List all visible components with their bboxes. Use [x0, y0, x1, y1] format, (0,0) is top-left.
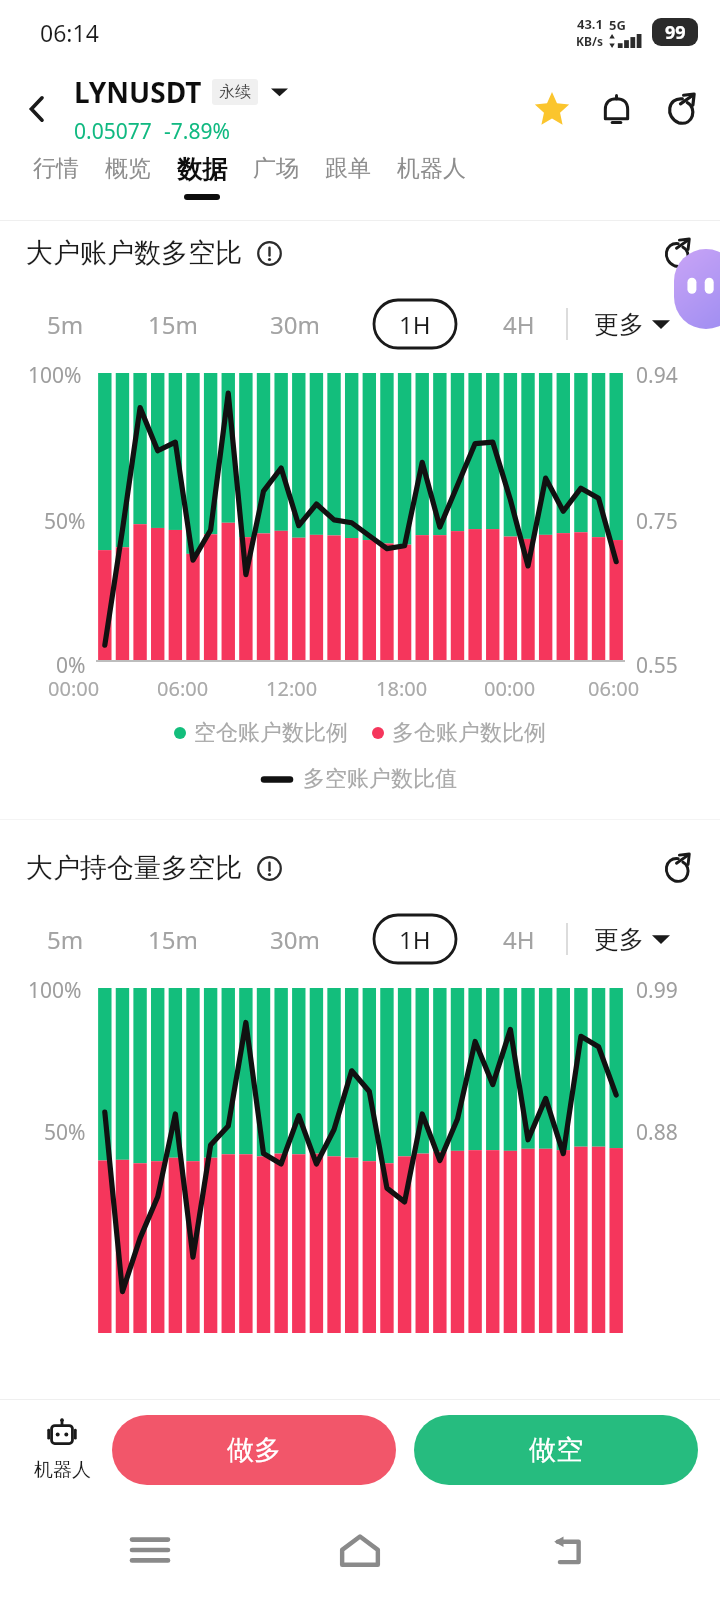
staticText: 5G [609, 16, 626, 34]
button[interactable]: 1H [374, 300, 456, 348]
staticText: 99 [665, 20, 686, 45]
staticText: 1H [399, 308, 431, 341]
staticText: 0.99 [636, 976, 678, 1005]
staticText: 00:00 [48, 675, 100, 702]
button[interactable]: Info [254, 853, 284, 883]
button[interactable]: 1H [374, 915, 456, 963]
button[interactable]: 永续 [212, 79, 258, 105]
button[interactable]: 5m [34, 300, 96, 348]
button[interactable]: Share chart [654, 231, 698, 275]
staticText: 做空 [529, 1433, 583, 1467]
staticText: 行情 [33, 154, 79, 183]
staticText: 5m [47, 308, 84, 341]
button[interactable]: 15m [142, 915, 204, 963]
staticText: 100% [28, 976, 82, 1005]
staticText: 多仓账户数比例 [392, 719, 546, 747]
staticText: 空仓账户数比例 [194, 719, 348, 747]
staticText: -7.89% [164, 117, 230, 146]
button[interactable]: Price alert [584, 77, 648, 141]
staticText: 数据 [177, 154, 227, 185]
button[interactable]: Change contract [268, 83, 290, 101]
button[interactable]: Recents [90, 1514, 210, 1586]
staticText: 06:00 [157, 675, 209, 702]
button[interactable]: 概览 [92, 154, 164, 183]
button[interactable]: Back [0, 64, 74, 154]
button[interactable]: 跟单 [312, 154, 384, 183]
staticText: 0% [56, 651, 86, 680]
button[interactable]: 广场 [240, 154, 312, 183]
staticText: 广场 [253, 154, 299, 183]
staticText: 4H [503, 308, 535, 341]
button[interactable]: 机器人 [18, 1400, 106, 1500]
staticText: 12:00 [266, 675, 318, 702]
staticText: 跟单 [325, 154, 371, 183]
staticText: 100% [28, 361, 82, 390]
staticText: 0.05077 [74, 117, 152, 146]
staticText: 0.55 [636, 651, 678, 680]
button[interactable]: 更多 [590, 305, 674, 344]
staticText: 0.94 [636, 361, 678, 390]
staticText: 06:14 [40, 17, 99, 48]
button[interactable]: Favorite [520, 77, 584, 141]
staticText: 概览 [105, 154, 151, 183]
button[interactable]: 行情 [20, 154, 92, 183]
button[interactable]: Share chart [654, 846, 698, 890]
staticText: 更多 [594, 309, 644, 340]
staticText: 43.1 [577, 15, 603, 33]
staticText: 50% [44, 507, 86, 536]
staticText: 大户账户数多空比 [26, 236, 242, 270]
staticText: 50% [44, 1118, 86, 1147]
staticText: 机器人 [397, 154, 466, 183]
staticText: KB/s [576, 33, 603, 49]
button[interactable]: Info [254, 238, 284, 268]
staticText: 机器人 [34, 1458, 91, 1482]
staticText: 00:00 [484, 675, 536, 702]
staticText: 永续 [219, 82, 251, 102]
button[interactable]: 做空 [414, 1415, 698, 1485]
button[interactable]: Back [510, 1514, 630, 1586]
staticText: 多空账户数比值 [303, 765, 457, 793]
staticText: 1H [399, 923, 431, 956]
staticText: 大户持仓量多空比 [26, 851, 242, 885]
button[interactable]: 30m [264, 915, 326, 963]
staticText: 15m [148, 923, 198, 956]
button[interactable]: Share [648, 77, 712, 141]
staticText: 更多 [594, 924, 644, 955]
button[interactable]: 更多 [590, 920, 674, 959]
staticText: 30m [270, 308, 320, 341]
button[interactable]: 做多 [112, 1415, 396, 1485]
staticText: 18:00 [376, 675, 428, 702]
button[interactable]: AI assistant [674, 249, 720, 329]
staticText: 0.75 [636, 507, 678, 536]
staticText: 06:00 [588, 675, 640, 702]
button[interactable]: 30m [264, 300, 326, 348]
button[interactable]: 15m [142, 300, 204, 348]
staticText: 0.88 [636, 1118, 678, 1147]
staticText: LYNUSDT [74, 73, 202, 111]
button[interactable]: Home [300, 1514, 420, 1586]
button[interactable]: 5m [34, 915, 96, 963]
button[interactable]: 数据 [164, 154, 240, 200]
staticText: 5m [47, 923, 84, 956]
staticText: 30m [270, 923, 320, 956]
button[interactable]: 4H [488, 915, 550, 963]
staticText: 15m [148, 308, 198, 341]
button[interactable]: 4H [488, 300, 550, 348]
button[interactable]: 机器人 [384, 154, 479, 183]
staticText: 4H [503, 923, 535, 956]
staticText: 做多 [227, 1433, 281, 1467]
